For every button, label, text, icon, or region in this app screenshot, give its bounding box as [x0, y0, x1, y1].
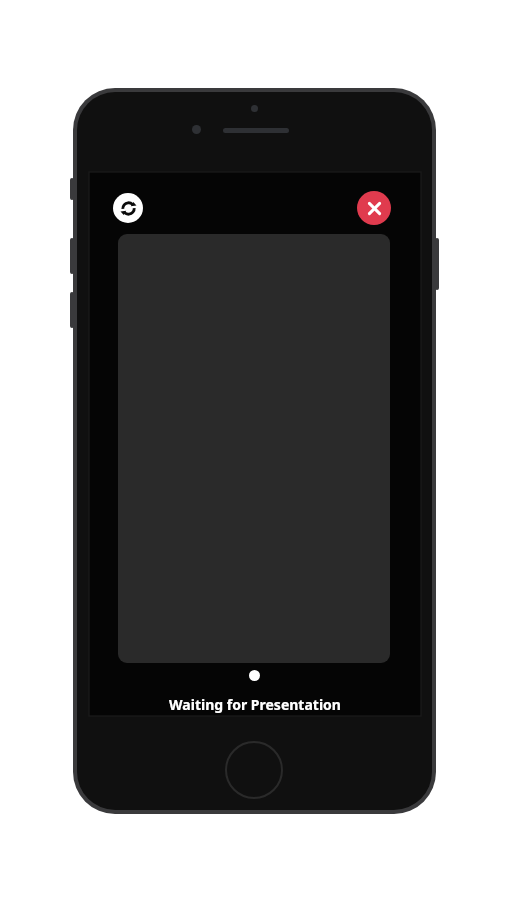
button[interactable]: Close: [357, 191, 391, 225]
staticText: Waiting for Presentation: [169, 695, 341, 714]
button[interactable]: Home: [225, 741, 283, 799]
button[interactable]: Refresh: [113, 193, 143, 223]
